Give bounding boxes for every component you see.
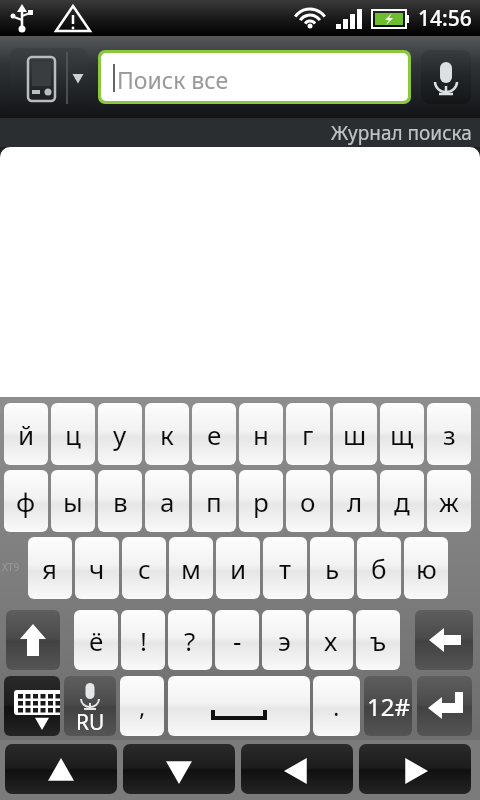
staticText: ё (89, 623, 104, 658)
button[interactable]: Цифры и символы (364, 676, 412, 736)
staticText: я (42, 551, 58, 586)
staticText: н (253, 417, 269, 452)
button[interactable]: ф (4, 470, 48, 532)
staticText: ? (184, 623, 196, 658)
button[interactable]: ы (51, 470, 95, 532)
button[interactable]: к (145, 403, 189, 465)
button[interactable]: ! (121, 610, 165, 670)
staticText: г (302, 417, 314, 452)
button[interactable]: э (262, 610, 306, 670)
button[interactable]: г (286, 403, 330, 465)
staticText: RU (76, 708, 105, 736)
staticText: XT9 (2, 560, 20, 574)
staticText: х (324, 623, 338, 658)
staticText: ф (16, 484, 36, 519)
button[interactable]: Shift (6, 610, 60, 670)
button[interactable]: н (239, 403, 283, 465)
button[interactable]: я (28, 537, 72, 599)
staticText: ю (416, 551, 437, 586)
button[interactable]: Вверх (5, 744, 117, 794)
staticText: е (207, 417, 222, 452)
staticText: э (278, 623, 291, 658)
staticText: - (233, 623, 242, 658)
staticText: ы (63, 484, 83, 519)
button[interactable]: Вправо (359, 744, 471, 794)
button[interactable]: Backspace (415, 610, 473, 670)
staticText: ь (325, 551, 340, 586)
staticText: ъ (370, 623, 387, 658)
staticText: 14:56 (418, 4, 472, 33)
button[interactable]: Источник поиска (10, 48, 88, 108)
button[interactable]: р (239, 470, 283, 532)
button[interactable]: ч (75, 537, 119, 599)
button[interactable]: , (120, 676, 164, 736)
staticText: в (113, 484, 128, 519)
button[interactable]: п (192, 470, 236, 532)
staticText: с (138, 551, 151, 586)
button[interactable]: м (169, 537, 213, 599)
button[interactable]: ю (404, 537, 448, 599)
staticText: й (18, 417, 35, 452)
staticText: п (206, 484, 222, 519)
staticText: а (160, 484, 175, 519)
button[interactable]: т (263, 537, 307, 599)
button[interactable]: ? (168, 610, 212, 670)
button[interactable]: д (380, 470, 424, 532)
button[interactable]: ё (74, 610, 118, 670)
staticText: д (394, 484, 410, 519)
button[interactable]: ц (51, 403, 95, 465)
staticText: у (113, 417, 127, 452)
button[interactable]: Голосовой поиск (421, 50, 471, 104)
button[interactable]: у (98, 403, 142, 465)
staticText: Поиск все (117, 64, 229, 95)
staticText: б (371, 551, 387, 586)
button[interactable]: а (145, 470, 189, 532)
button[interactable]: - (215, 610, 259, 670)
staticText: ч (89, 551, 105, 586)
button[interactable]: щ (380, 403, 424, 465)
button[interactable]: Влево (241, 744, 353, 794)
button[interactable]: в (98, 470, 142, 532)
button[interactable]: ь (310, 537, 354, 599)
button[interactable]: б (357, 537, 401, 599)
button[interactable]: Поиск все (98, 50, 411, 104)
button[interactable]: и (216, 537, 260, 599)
button[interactable]: е (192, 403, 236, 465)
staticText: ! (140, 623, 147, 658)
staticText: о (300, 484, 316, 519)
button[interactable]: ш (333, 403, 377, 465)
staticText: ш (343, 417, 367, 452)
staticText: м (181, 551, 201, 586)
staticText: р (253, 484, 269, 519)
button[interactable]: Журнал поиска (0, 118, 480, 147)
staticText: Журнал поиска (331, 120, 472, 146)
button[interactable]: о (286, 470, 330, 532)
staticText: ж (439, 484, 459, 519)
button[interactable]: й (4, 403, 48, 465)
button[interactable]: Enter (417, 676, 472, 736)
staticText: т (279, 551, 292, 586)
button[interactable]: л (333, 470, 377, 532)
staticText: и (230, 551, 247, 586)
button[interactable]: з (427, 403, 471, 465)
button[interactable]: . (313, 676, 360, 736)
button[interactable]: х (309, 610, 353, 670)
staticText: 12# (367, 690, 410, 723)
button[interactable]: Скрыть клавиатуру (4, 676, 60, 736)
staticText: , (139, 690, 146, 723)
button[interactable]: Сменить язык (64, 676, 116, 736)
staticText: . (333, 690, 340, 723)
button[interactable]: ъ (356, 610, 400, 670)
staticText: к (160, 417, 174, 452)
button[interactable]: Пробел (168, 676, 310, 736)
staticText: щ (390, 417, 414, 452)
staticText: л (347, 484, 363, 519)
staticText: з (443, 417, 456, 452)
button[interactable]: Вниз (123, 744, 235, 794)
staticText: ц (65, 417, 81, 452)
button[interactable]: с (122, 537, 166, 599)
button[interactable]: ж (427, 470, 471, 532)
